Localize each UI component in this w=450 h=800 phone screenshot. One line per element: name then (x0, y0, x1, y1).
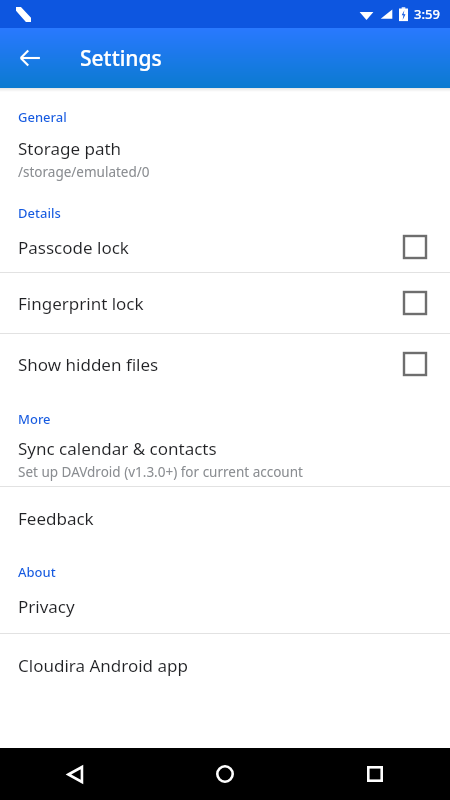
staticText: Show hidden files (18, 353, 159, 376)
button[interactable]: Passcode lock (0, 222, 450, 272)
staticText: More (18, 410, 51, 428)
staticText: Passcode lock (18, 236, 129, 259)
button[interactable]: Show hidden files (0, 334, 450, 394)
button[interactable]: Feedback (0, 487, 450, 547)
staticText: Sync calendar & contacts (18, 437, 217, 460)
button[interactable]: Back (0, 748, 150, 800)
staticText: General (18, 108, 67, 126)
button[interactable]: Cloudira Android app (0, 634, 450, 694)
staticText: Storage path (18, 137, 122, 160)
button[interactable]: Home (150, 748, 300, 800)
staticText: Details (18, 204, 61, 222)
staticText: 3:59 (414, 5, 440, 23)
button[interactable]: Back (8, 36, 52, 80)
staticText: About (18, 563, 56, 581)
staticText: Set up DAVdroid (v1.3.0+) for current ac… (18, 463, 303, 481)
staticText: Fingerprint lock (18, 292, 144, 315)
button[interactable]: Fingerprint lock (0, 273, 450, 333)
staticText: Settings (80, 44, 162, 73)
button[interactable]: Storage path (0, 126, 450, 188)
staticText: Privacy (18, 595, 75, 618)
button[interactable]: Sync calendar & contacts (0, 428, 450, 486)
staticText: /storage/emulated/0 (18, 163, 150, 181)
button[interactable]: Recent apps (300, 748, 450, 800)
staticText: Feedback (18, 507, 94, 530)
button[interactable]: Privacy (0, 581, 450, 633)
staticText: Cloudira Android app (18, 654, 188, 677)
